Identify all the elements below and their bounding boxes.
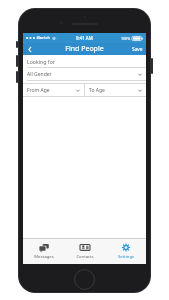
staticText: Contacts [76, 254, 94, 260]
button[interactable]: To Age [85, 84, 146, 96]
staticText: Looking for [27, 58, 55, 65]
button[interactable]: Settings [105, 239, 146, 264]
staticText: 9:41 AM [76, 35, 93, 41]
button[interactable]: Contacts [64, 239, 105, 264]
button[interactable]: Save [132, 43, 143, 55]
staticText: 100% [121, 36, 131, 41]
staticText: Save [132, 46, 143, 53]
button[interactable]: Messages [23, 239, 64, 264]
staticText: All Gender [27, 71, 52, 78]
staticText: From Age [27, 87, 50, 94]
button[interactable]: From Age [23, 84, 84, 96]
staticText: To Age [89, 87, 105, 94]
staticText: Messages [34, 254, 54, 260]
staticText: Sketch [37, 35, 51, 41]
button[interactable]: Back [23, 43, 37, 55]
button[interactable]: All Gender [23, 68, 146, 80]
staticText: Find People [65, 44, 104, 54]
staticText: Settings [118, 254, 134, 260]
